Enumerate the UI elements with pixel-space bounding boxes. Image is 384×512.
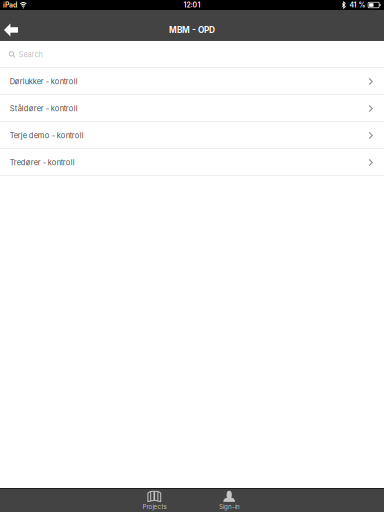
staticText: 12:01	[183, 1, 200, 9]
staticText: Projects	[142, 503, 166, 510]
button[interactable]: Projects	[117, 489, 192, 512]
staticText: Dørlukker - kontroll	[10, 77, 78, 86]
button[interactable]: Sign-in	[192, 489, 267, 512]
button[interactable]: Search	[0, 41, 384, 67]
button[interactable]: Back	[0, 19, 26, 41]
staticText: Tredører - kontroll	[10, 158, 75, 167]
staticText: MBM - OPD	[169, 25, 215, 35]
button[interactable]: Terje demo - kontroll	[0, 122, 384, 149]
button[interactable]: Dørlukker - kontroll	[0, 68, 384, 95]
staticText: 41 %	[350, 1, 366, 9]
staticText: iPad	[3, 1, 17, 9]
staticText: Terje demo - kontroll	[10, 131, 84, 140]
staticText: Search	[19, 50, 43, 59]
staticText: Ståldører - kontroll	[10, 104, 78, 113]
button[interactable]: Ståldører - kontroll	[0, 95, 384, 122]
staticText: Sign-in	[219, 503, 240, 510]
button[interactable]: Tredører - kontroll	[0, 149, 384, 176]
